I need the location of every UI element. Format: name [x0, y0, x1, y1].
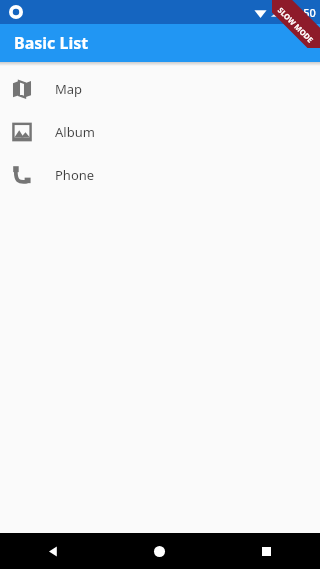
button[interactable]: Home — [106, 533, 213, 569]
staticText: 4:50 — [294, 5, 316, 20]
button[interactable]: Recent apps — [213, 533, 320, 569]
button[interactable]: Map — [0, 67, 320, 110]
staticText: Album — [55, 123, 95, 141]
staticText: Basic List — [14, 32, 89, 54]
staticText: Phone — [55, 166, 95, 184]
button[interactable]: Album — [0, 110, 320, 153]
button[interactable]: Back — [0, 533, 106, 569]
button[interactable]: Phone — [0, 153, 320, 196]
staticText: Map — [55, 80, 83, 98]
staticText: SLOW MODE — [276, 5, 315, 45]
